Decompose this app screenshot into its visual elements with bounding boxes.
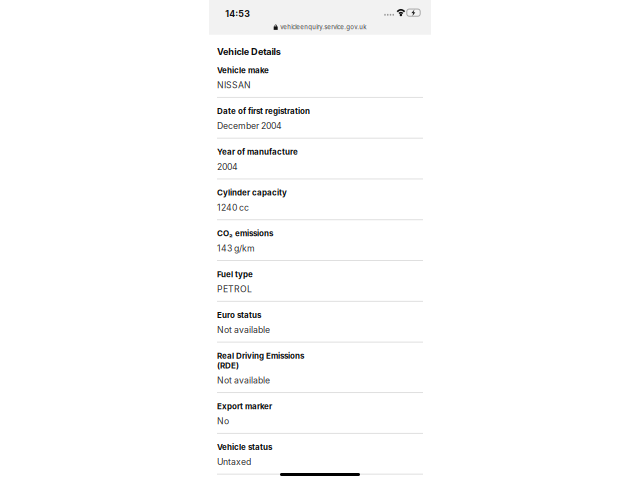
staticText: Cylinder capacity bbox=[217, 188, 287, 197]
staticText: vehicleenquiry.service.gov.uk bbox=[280, 23, 366, 31]
staticText: Year of manufacture bbox=[217, 147, 298, 157]
staticText: 143 g/km bbox=[217, 243, 255, 254]
staticText: December 2004 bbox=[217, 121, 282, 131]
staticText: Real Driving Emissions bbox=[217, 351, 304, 361]
staticText: Vehicle make bbox=[217, 65, 269, 75]
staticText: Date of first registration bbox=[217, 106, 310, 116]
staticText: 14:53 bbox=[225, 8, 250, 19]
staticText: No bbox=[217, 416, 229, 426]
staticText: (RDE) bbox=[217, 361, 239, 370]
staticText: Vehicle status bbox=[217, 442, 272, 452]
staticText: Fuel type bbox=[217, 269, 253, 279]
staticText: PETROL bbox=[217, 284, 252, 294]
staticText: Euro status bbox=[217, 310, 261, 320]
staticText: Vehicle Details bbox=[217, 46, 281, 57]
staticText: 1240 cc bbox=[217, 202, 249, 213]
staticText: Untaxed bbox=[217, 457, 251, 467]
staticText: NISSAN bbox=[217, 80, 251, 90]
staticText: Export marker bbox=[217, 401, 272, 411]
staticText: 2004 bbox=[217, 161, 238, 172]
staticText: CO₂ emissions bbox=[217, 229, 273, 238]
staticText: Not available bbox=[217, 375, 270, 386]
staticText: Not available bbox=[217, 325, 270, 335]
